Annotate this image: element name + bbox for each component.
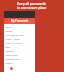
button[interactable]: Add password: [10, 67, 13, 70]
staticText: Dropbox work: [5, 58, 21, 61]
button[interactable]: Dropbox work: [5, 57, 35, 61]
staticText: E-mail - Yahoo: [5, 38, 21, 41]
staticText: Keep all passwords: [17, 2, 47, 6]
button[interactable]: Spotify: [5, 61, 35, 65]
staticText: My Passwords: [11, 19, 29, 23]
staticText: Facebook account: [5, 34, 25, 37]
button[interactable]: Twitter: [5, 29, 35, 33]
staticText: Netflix HBO: [5, 54, 18, 57]
staticText: Spotify: [5, 62, 13, 65]
staticText: E-mail - Outlook: [5, 42, 23, 45]
staticText: in one secure place: [17, 6, 47, 10]
button[interactable]: Facebook account: [5, 33, 35, 37]
button[interactable]: My Passwords: [4, 18, 35, 24]
staticText: Amazon: [5, 50, 14, 53]
button[interactable]: E-mail - Outlook: [5, 41, 35, 45]
button[interactable]: Netflix HBO: [5, 53, 35, 57]
button[interactable]: Amazon: [5, 49, 35, 53]
staticText: Twitter: [5, 30, 13, 33]
button[interactable]: E-mail - Yahoo: [5, 37, 35, 41]
button[interactable]: Bank: [5, 45, 35, 49]
button[interactable]: Gmail: [5, 25, 35, 29]
staticText: Bank: [5, 46, 11, 49]
staticText: Gmail: [5, 26, 12, 29]
